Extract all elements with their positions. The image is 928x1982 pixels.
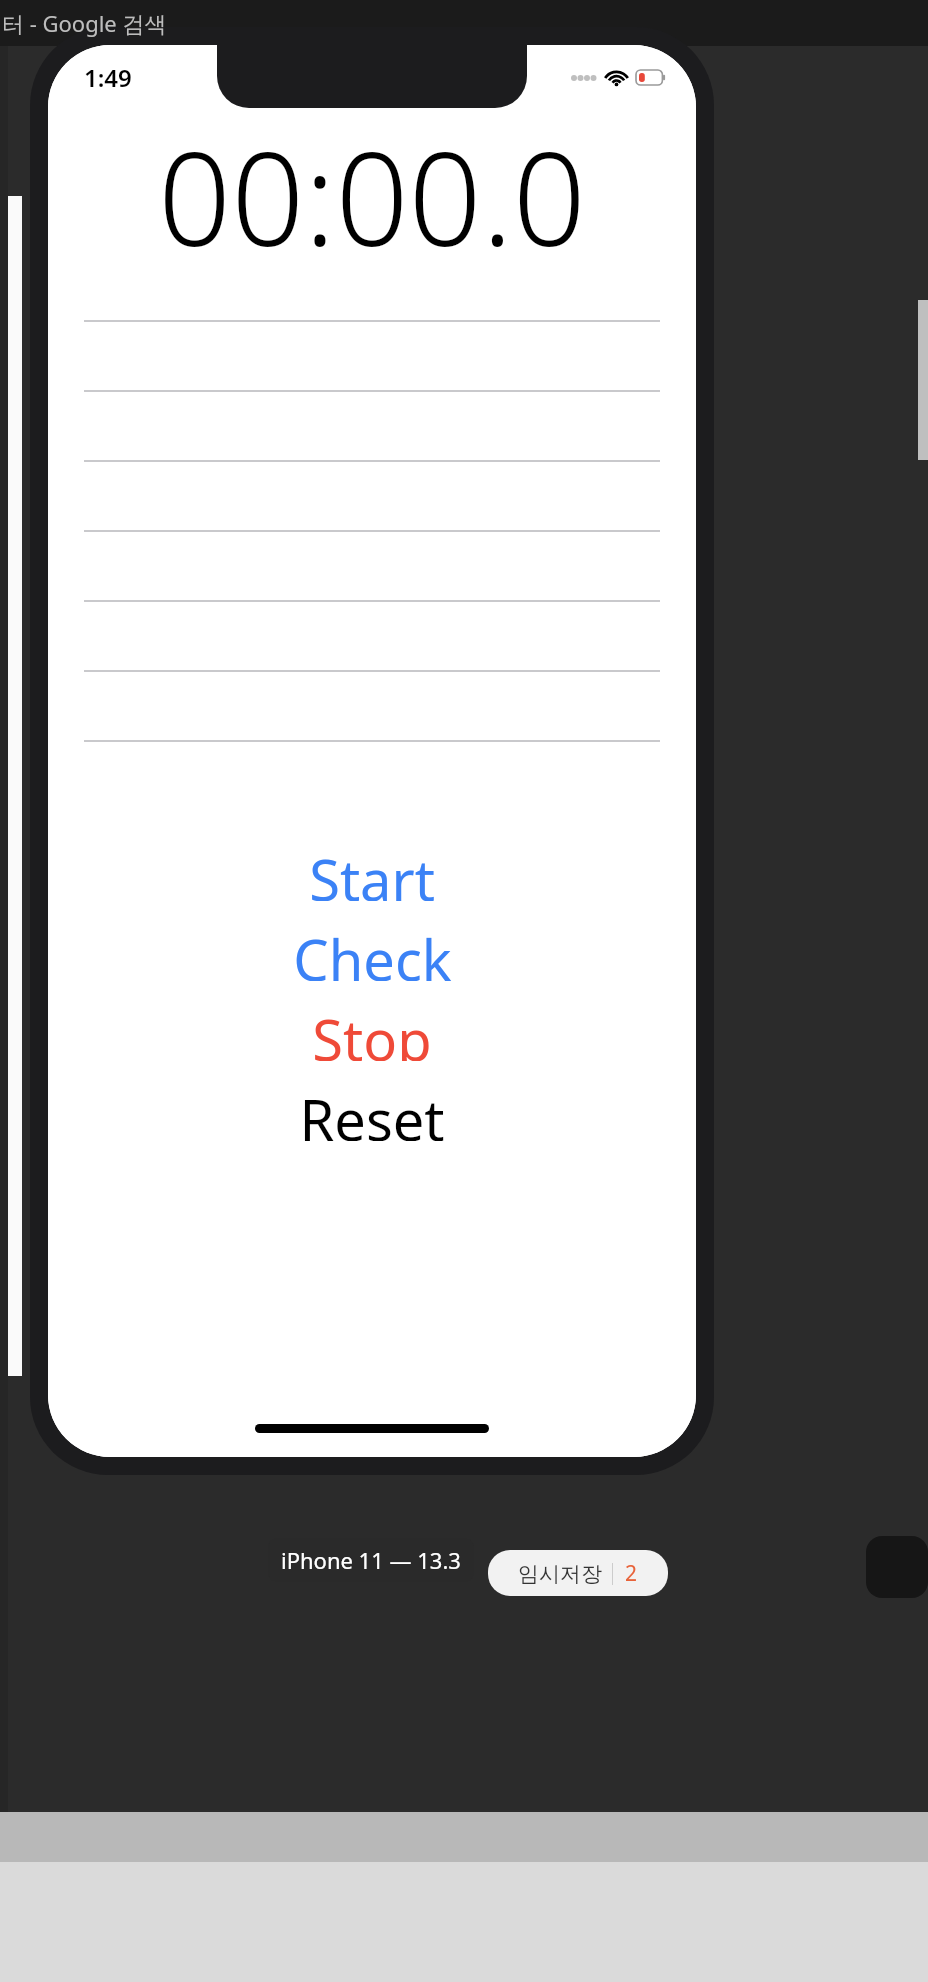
button[interactable] [84, 741, 660, 811]
button[interactable] [84, 461, 660, 531]
button[interactable]: Start [48, 841, 696, 901]
staticText: 임시저장 [518, 1561, 602, 1587]
button[interactable] [84, 601, 660, 671]
button[interactable] [84, 671, 660, 741]
button[interactable]: 임시저장 [488, 1550, 668, 1596]
staticText: Start [309, 841, 435, 901]
button[interactable]: Check [48, 921, 696, 981]
staticText: 2 [625, 1559, 638, 1588]
staticText: Reset [299, 1081, 445, 1141]
button[interactable] [84, 531, 660, 601]
button[interactable]: iPhone 11 — 13.3 [268, 1538, 474, 1582]
button[interactable]: Stop [48, 1001, 696, 1061]
staticText: Stop [312, 1001, 432, 1061]
staticText: iPhone 11 — 13.3 [281, 1545, 461, 1575]
staticText: 터 - Google 검색 [2, 8, 167, 38]
staticText: Check [293, 921, 452, 981]
staticText: 00:00.0 [158, 109, 586, 259]
staticText: 1:49 [84, 61, 132, 94]
button[interactable] [84, 391, 660, 461]
button[interactable]: Reset [48, 1081, 696, 1141]
button[interactable] [84, 321, 660, 391]
